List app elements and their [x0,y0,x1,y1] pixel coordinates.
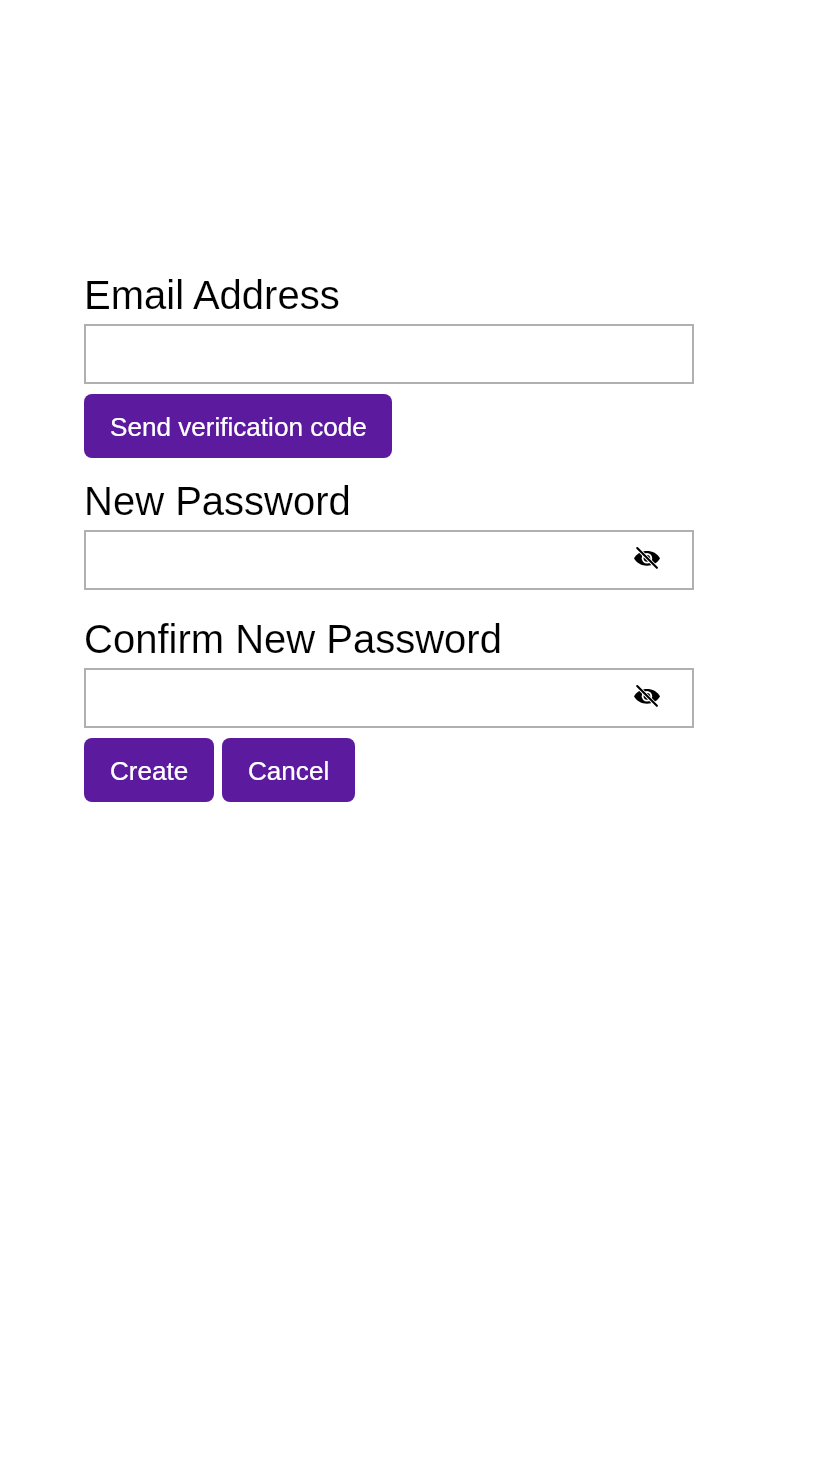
staticText: New Password [84,479,351,524]
staticText: Send verification code [110,412,367,441]
button[interactable]: Email Address [84,324,694,384]
button[interactable]: Send verification code [84,394,392,458]
staticText: Cancel [248,756,330,785]
button[interactable]: Cancel [222,738,355,802]
button[interactable]: Confirm New Password [84,668,694,728]
button[interactable]: Create [84,738,214,802]
button[interactable]: Show password [625,668,669,726]
button[interactable]: Show password [625,530,669,588]
staticText: Create [110,756,189,785]
button[interactable]: New Password [84,530,694,590]
staticText: Email Address [84,273,340,318]
staticText: Confirm New Password [84,617,502,662]
